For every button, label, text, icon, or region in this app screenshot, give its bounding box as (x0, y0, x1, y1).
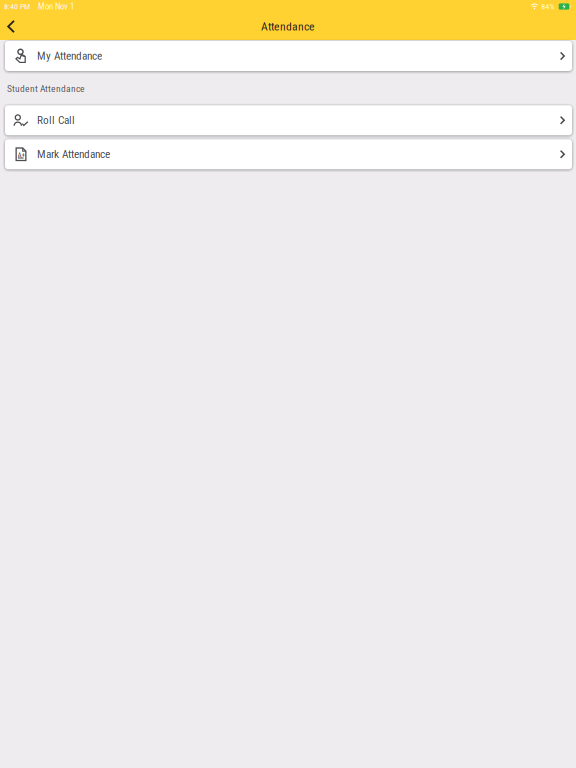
staticText: My Attendance (37, 49, 102, 63)
button[interactable]: Back (0, 16, 24, 37)
staticText: 84% (541, 2, 554, 11)
button[interactable]: My Attendance (5, 41, 572, 71)
staticText: 8:40 PM (4, 2, 30, 11)
staticText: Mon Nov 1 (38, 1, 74, 12)
button[interactable]: Roll Call (5, 105, 572, 135)
staticText: Mark Attendance (37, 148, 110, 161)
staticText: Student Attendance (7, 83, 85, 94)
staticText: Roll Call (37, 114, 75, 127)
staticText: A+ (18, 151, 26, 159)
button[interactable]: A+ (5, 139, 572, 169)
staticText: Attendance (261, 20, 315, 33)
